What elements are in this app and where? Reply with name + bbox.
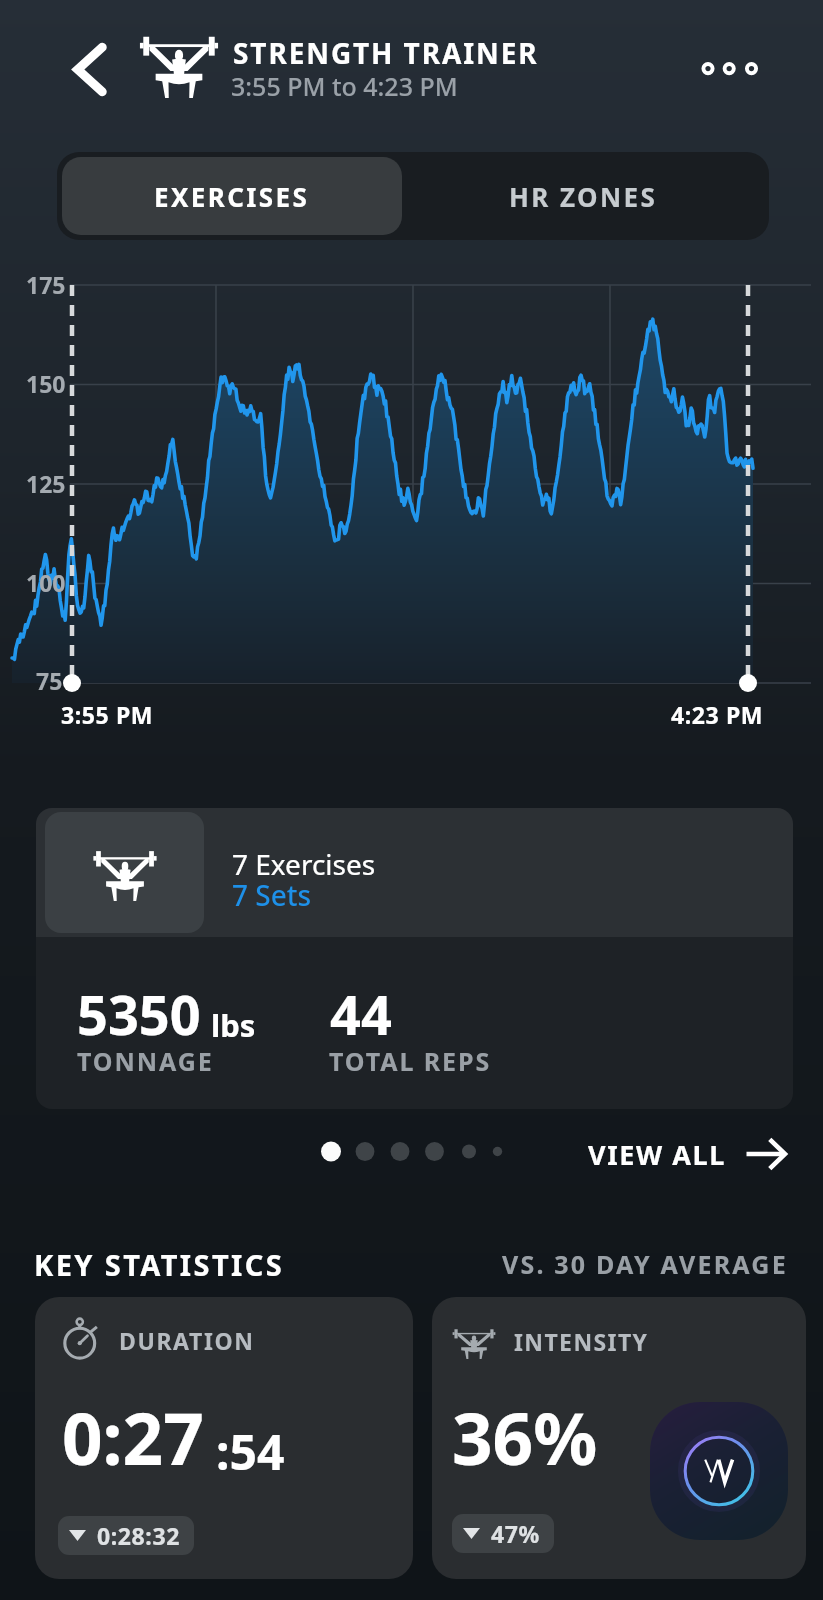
button[interactable]: More options (688, 40, 770, 98)
button[interactable]: Back (56, 38, 124, 100)
staticText: 0:28:32 (97, 1520, 180, 1551)
staticText: INTENSITY (514, 1326, 649, 1357)
staticText: :54 (216, 1419, 285, 1484)
staticText: lbs (211, 1004, 256, 1046)
staticText: TONNAGE (77, 1044, 214, 1078)
staticText: 125 (26, 468, 66, 499)
button[interactable]: HR ZONES (402, 157, 764, 235)
staticText: 44 (330, 977, 392, 1051)
staticText: STRENGTH TRAINER (233, 34, 539, 72)
staticText: 5350 (77, 977, 201, 1051)
staticText: 3:55 PM (61, 699, 154, 730)
staticText: 100 (26, 567, 66, 598)
staticText: VS. 30 DAY AVERAGE (502, 1247, 788, 1281)
button[interactable]: DURATION (35, 1297, 413, 1579)
staticText: VIEW ALL (588, 1136, 726, 1173)
staticText: HR ZONES (509, 179, 658, 214)
staticText: 47% (491, 1518, 540, 1549)
staticText: KEY STATISTICS (34, 1245, 285, 1284)
staticText: 3:55 PM to 4:23 PM (231, 69, 458, 103)
staticText: 7 Sets (232, 876, 312, 914)
button[interactable]: 7 Exercises (36, 808, 793, 1109)
button[interactable]: EXERCISES (62, 157, 402, 235)
staticText: TOTAL REPS (329, 1044, 492, 1078)
button[interactable]: INTENSITY (432, 1297, 806, 1579)
staticText: DURATION (119, 1325, 255, 1356)
staticText: 4:23 PM (671, 699, 764, 730)
staticText: 175 (26, 269, 66, 300)
staticText: 7 Exercises (232, 845, 376, 883)
staticText: 150 (26, 368, 66, 399)
staticText: 0:27 (62, 1389, 204, 1486)
staticText: 75 (36, 665, 63, 696)
button[interactable]: VIEW ALL (588, 1124, 788, 1184)
staticText: EXERCISES (154, 179, 310, 214)
staticText: 36% (452, 1389, 598, 1486)
